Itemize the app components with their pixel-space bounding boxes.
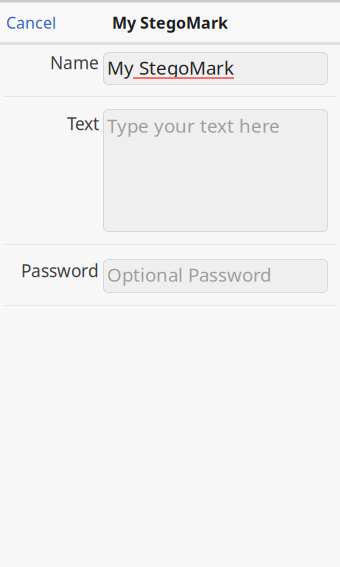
- button[interactable]: Type your text here: [103, 97, 328, 244]
- staticText: My StegoMark: [107, 55, 234, 80]
- staticText: Type your text here: [107, 113, 280, 138]
- button[interactable]: Cancel: [0, 3, 62, 42]
- button[interactable]: Optional Password: [103, 245, 328, 305]
- staticText: Name: [50, 51, 99, 74]
- staticText: Text: [67, 112, 99, 135]
- staticText: My StegoMark: [112, 12, 228, 33]
- button[interactable]: My StegoMark: [103, 45, 328, 96]
- staticText: Cancel: [6, 12, 56, 33]
- staticText: Optional Password: [107, 262, 271, 287]
- staticText: Password: [21, 259, 99, 282]
